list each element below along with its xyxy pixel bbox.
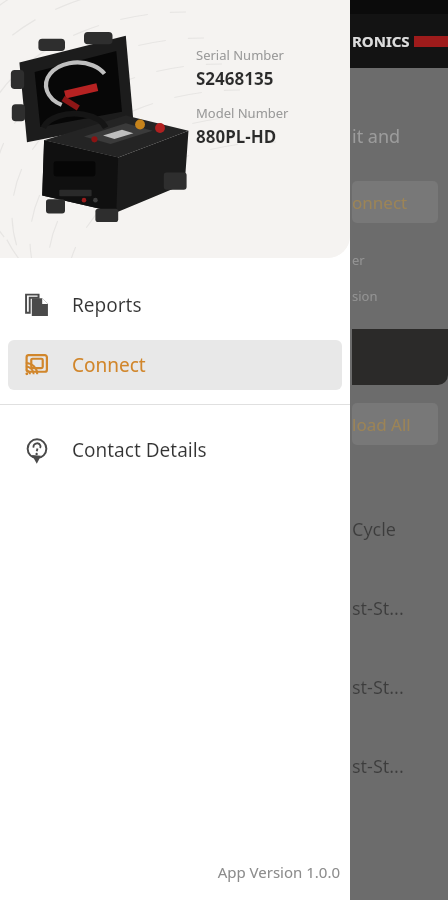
- staticText: Reports: [72, 292, 142, 318]
- staticText: Contact Details: [72, 437, 207, 463]
- staticText: Model Number: [196, 104, 289, 122]
- staticText: Cycle: [352, 517, 396, 542]
- staticText: Serial Number: [196, 46, 284, 64]
- staticText: st-St...: [352, 754, 404, 779]
- staticText: it and: [352, 124, 401, 149]
- staticText: App Version 1.0.0: [0, 862, 340, 882]
- staticText: RONICS: [352, 31, 410, 51]
- staticText: S2468135: [196, 67, 274, 90]
- button[interactable]: Connect: [8, 340, 342, 390]
- staticText: load All: [352, 413, 411, 436]
- staticText: st-St...: [352, 596, 404, 621]
- button[interactable]: Contact Details: [8, 425, 342, 475]
- staticText: onnect: [352, 191, 408, 214]
- staticText: sion: [352, 287, 378, 305]
- staticText: st-St...: [352, 675, 404, 700]
- button[interactable]: Reports: [8, 280, 342, 330]
- staticText: 880PL-HD: [196, 125, 277, 148]
- staticText: er: [352, 251, 365, 269]
- staticText: Connect: [72, 352, 146, 378]
